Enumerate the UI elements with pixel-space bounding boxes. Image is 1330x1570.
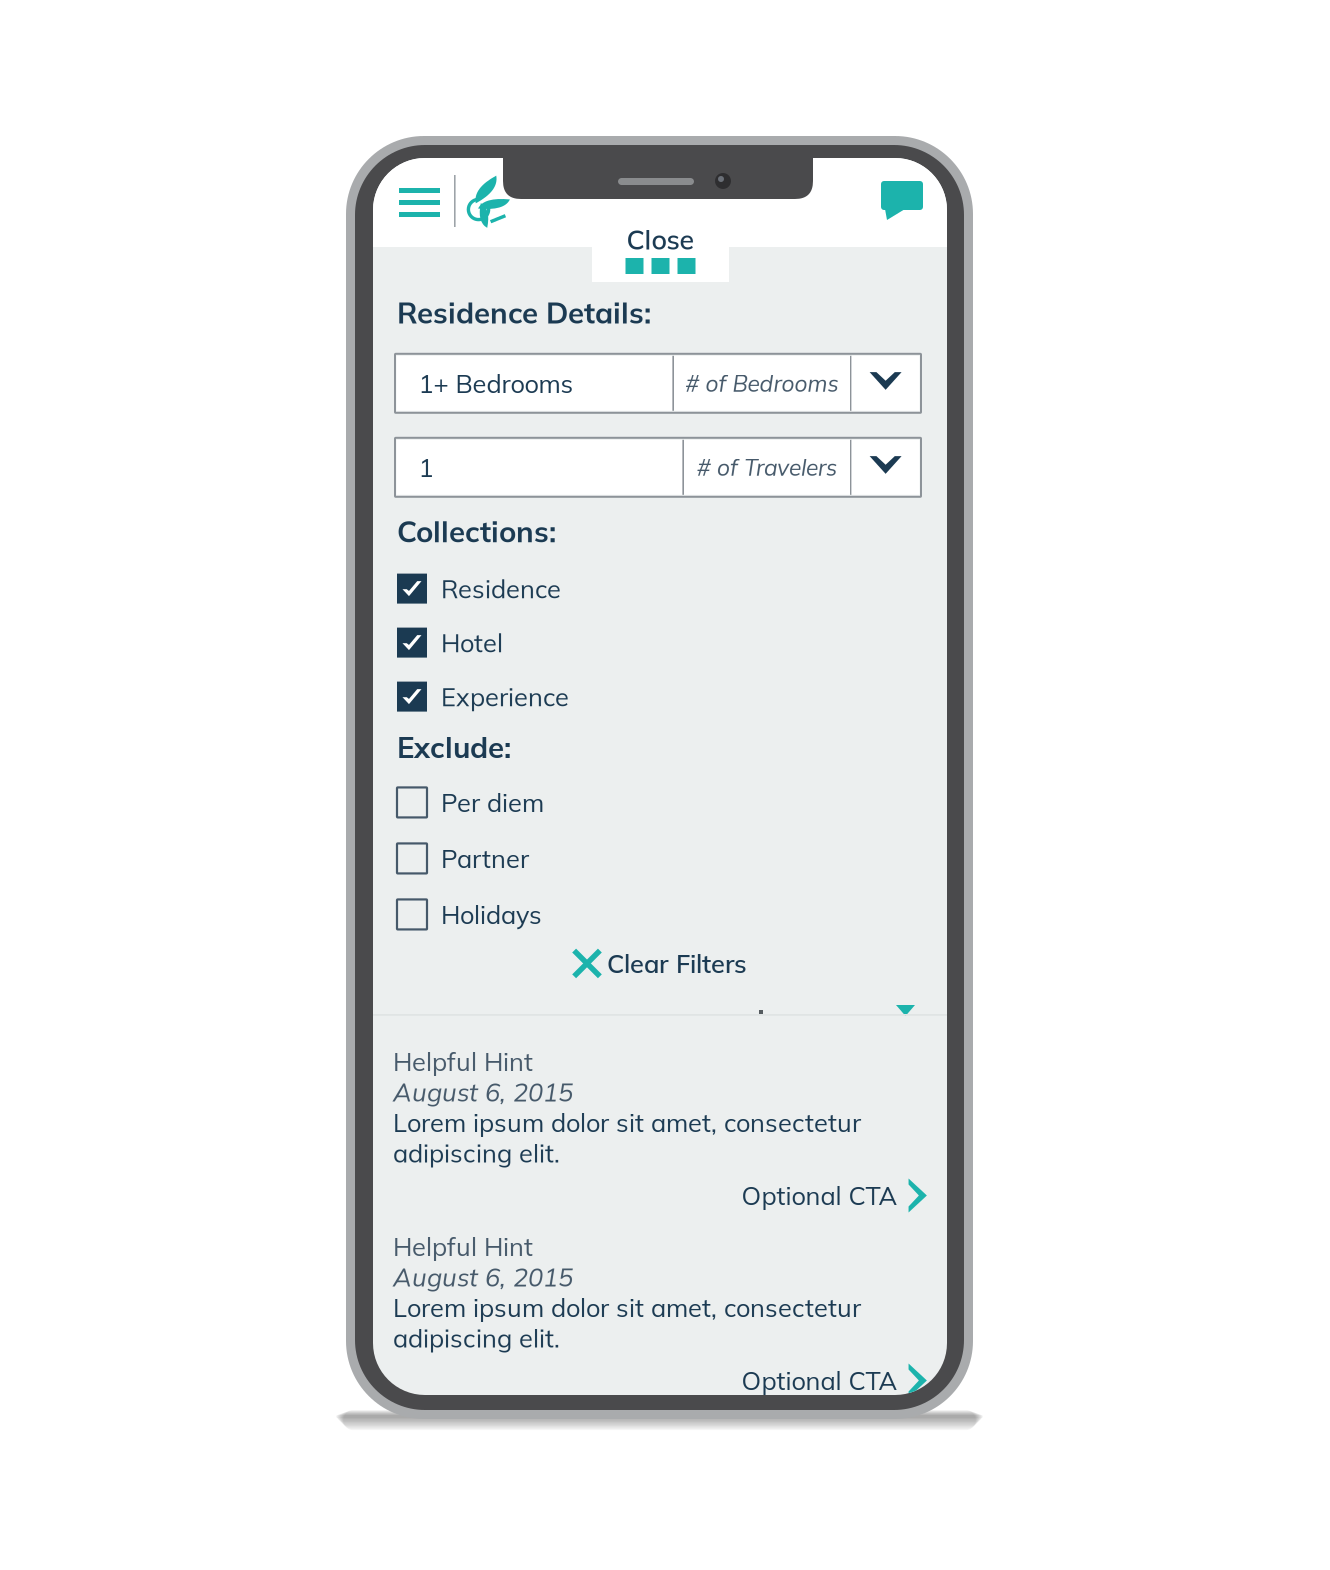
button[interactable]: # of Travelers xyxy=(684,440,850,495)
staticText: August 6, 2015 xyxy=(393,1261,573,1293)
staticText: Experience xyxy=(441,681,569,712)
button[interactable]: Experience xyxy=(397,676,697,718)
button[interactable]: Hotel xyxy=(397,622,697,664)
staticText: Close xyxy=(626,223,694,256)
staticText: Exclude: xyxy=(397,729,511,765)
staticText: 1+ Bedrooms xyxy=(418,367,573,399)
staticText: Residence Details: xyxy=(397,294,651,331)
staticText: Optional CTA xyxy=(742,1180,898,1211)
button[interactable]: Messages xyxy=(881,181,935,231)
staticText: # of Travelers xyxy=(697,453,837,481)
staticText: Holidays xyxy=(441,898,542,930)
button[interactable]: Menu xyxy=(399,175,454,230)
staticText: Per diem xyxy=(441,786,544,818)
staticText: Partner xyxy=(441,842,529,874)
button[interactable]: Helpful Hint xyxy=(373,1046,947,1231)
staticText: Residence xyxy=(441,573,561,604)
button[interactable]: # of Bedrooms xyxy=(674,356,850,411)
staticText: Helpful Hint xyxy=(393,1046,533,1077)
button[interactable]: Choose number of travelers xyxy=(852,440,920,495)
staticText: Helpful Hint xyxy=(393,1231,533,1262)
staticText: Optional CTA xyxy=(742,1365,898,1396)
staticText: Lorem ipsum dolor sit amet, consectetur xyxy=(393,1107,861,1138)
button[interactable]: Close xyxy=(592,217,729,282)
staticText: Clear Filters xyxy=(607,947,747,979)
staticText: 1 xyxy=(418,451,433,483)
button[interactable]: Helpful Hint xyxy=(373,1231,947,1416)
staticText: Lorem ipsum dolor sit amet, consectetur xyxy=(393,1292,861,1323)
staticText: adipiscing elit. xyxy=(393,1137,560,1169)
button[interactable]: Choose number of bedrooms xyxy=(852,356,920,411)
staticText: Collections: xyxy=(397,513,556,550)
button[interactable]: Per diem xyxy=(397,781,697,823)
button[interactable]: Clear Filters xyxy=(570,941,750,985)
button[interactable]: 1 xyxy=(396,440,682,495)
button[interactable]: 1+ Bedrooms xyxy=(396,356,672,411)
button[interactable]: Partner xyxy=(397,837,697,879)
staticText: adipiscing elit. xyxy=(393,1322,560,1354)
staticText: # of Bedrooms xyxy=(685,369,838,397)
button[interactable]: Home xyxy=(465,175,525,233)
button[interactable]: Residence xyxy=(397,568,697,610)
staticText: August 6, 2015 xyxy=(393,1076,573,1108)
staticText: Hotel xyxy=(441,627,503,658)
button[interactable]: Holidays xyxy=(397,893,697,935)
